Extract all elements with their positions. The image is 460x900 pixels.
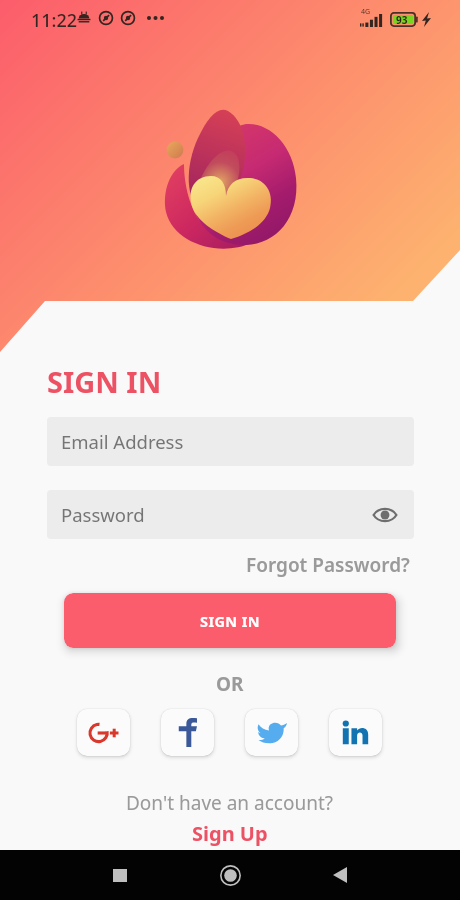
staticText: 11:22 [31,8,78,33]
button[interactable]: Password [47,490,414,539]
button[interactable]: Email Address [47,417,414,466]
staticText: Don't have an account? [126,790,334,816]
staticText: 93 [396,13,408,27]
button[interactable]: Sign in with Facebook [161,709,214,756]
button[interactable]: Back [320,855,360,895]
staticText: 4G [361,7,371,17]
button[interactable]: Home [210,855,250,895]
button[interactable]: SIGN IN [64,593,396,648]
button[interactable]: Sign in with Google [77,709,130,756]
staticText: SIGN IN [200,611,260,631]
button[interactable]: Show password [370,500,400,530]
staticText: SIGN IN [47,362,162,401]
staticText: Email Address [61,429,184,454]
button[interactable]: Sign in with LinkedIn [329,709,382,756]
button[interactable]: Recents [100,855,140,895]
button[interactable]: Sign in with Twitter [245,709,298,756]
staticText: OR [216,671,244,697]
staticText: Password [61,502,145,527]
button[interactable]: Sign Up [192,820,268,847]
button[interactable]: Forgot Password? [246,552,410,578]
